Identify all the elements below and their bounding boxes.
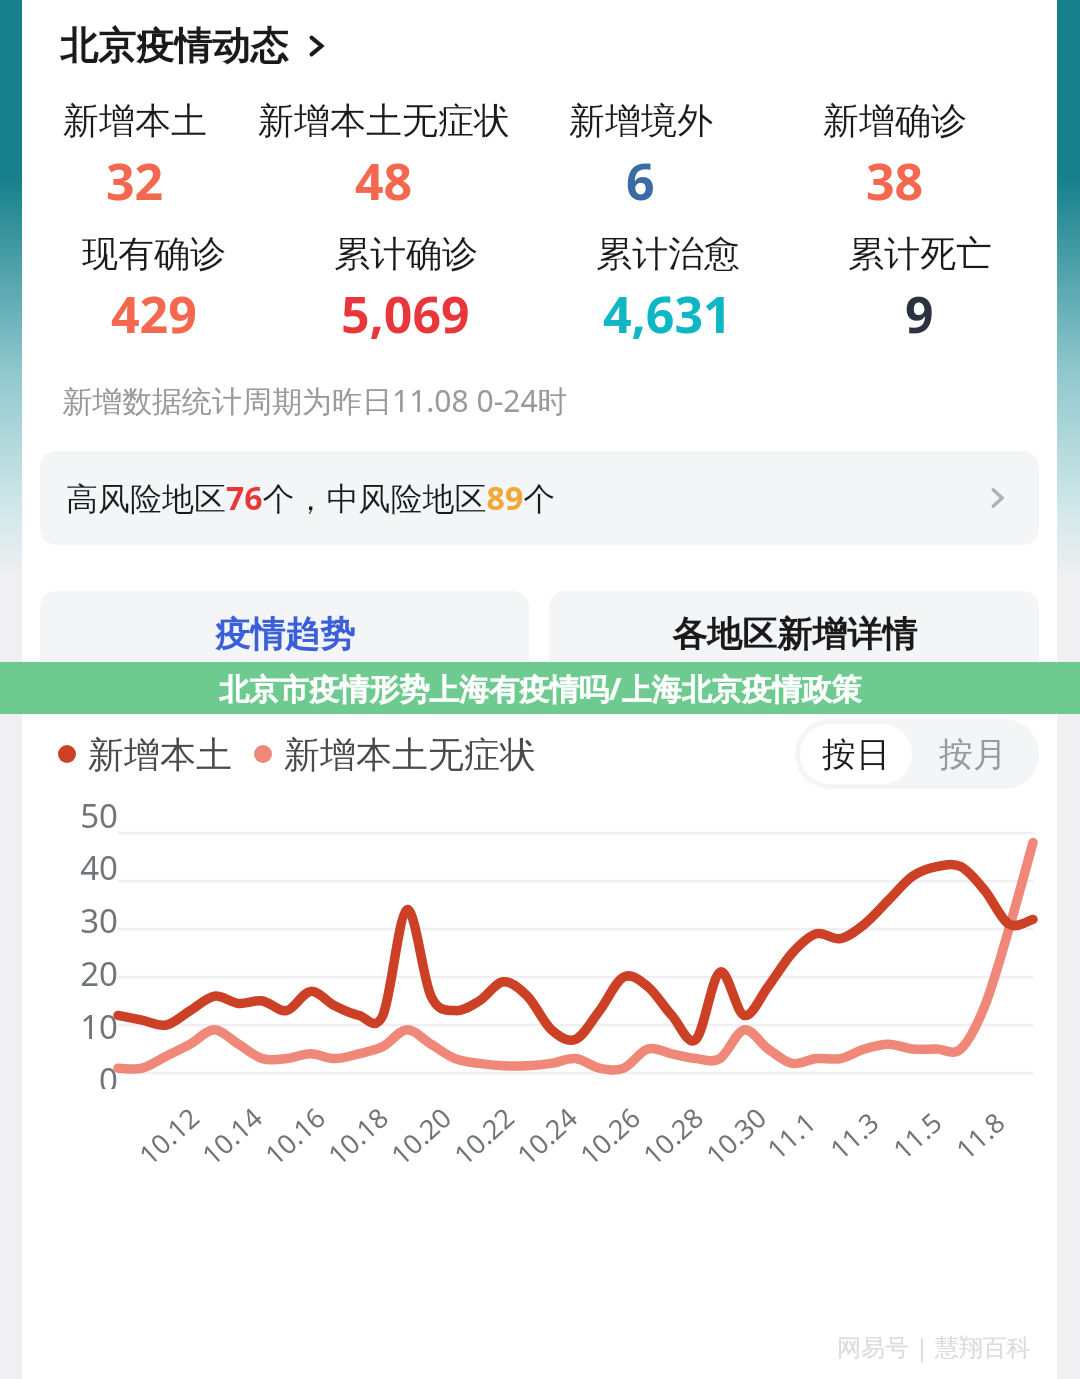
staticText: 新增境外 (569, 98, 713, 143)
staticText: 11.3 (822, 1104, 886, 1167)
staticText: 40 (80, 845, 118, 890)
staticText: 新增本土 (88, 732, 232, 777)
staticText: 20 (80, 951, 118, 996)
staticText: 5,069 (341, 280, 470, 348)
button[interactable]: 疫情趋势 (40, 591, 529, 677)
button[interactable]: 北京疫情动态 (60, 22, 330, 70)
staticText: 9 (905, 280, 934, 348)
staticText: 新增本土无症状 (258, 98, 510, 143)
staticText: 10.28 (635, 1098, 711, 1173)
staticText: 累计确诊 (334, 231, 478, 276)
staticText: 新增数据统计周期为昨日11.08 0-24时 (62, 380, 568, 421)
button[interactable]: 各地区新增详情 (549, 591, 1039, 677)
staticText: 6 (626, 147, 655, 215)
staticText: 按月 (939, 733, 1007, 776)
staticText: 4,631 (603, 280, 732, 348)
staticText: 累计治愈 (596, 231, 740, 276)
staticText: 30 (80, 898, 118, 943)
staticText: 0 (99, 1057, 118, 1089)
staticText: 10.16 (257, 1098, 333, 1173)
staticText: 新增本土 (63, 98, 207, 143)
staticText: 北京疫情动态 (60, 22, 288, 70)
button[interactable]: 按日 (800, 724, 912, 784)
staticText: 网易号 | 慧翔百科 (837, 1330, 1031, 1363)
staticText: 10.12 (131, 1098, 207, 1173)
staticText: 10.22 (446, 1098, 522, 1173)
staticText: 11.1 (759, 1104, 823, 1167)
staticText: 48 (355, 147, 413, 215)
staticText: 10.20 (383, 1098, 459, 1173)
staticText: 新增本土无症状 (284, 732, 536, 777)
staticText: 按日 (822, 733, 890, 776)
staticText: 各地区新增详情 (672, 612, 917, 656)
staticText: 10.14 (194, 1098, 270, 1173)
button[interactable]: 高风险地区76个，中风险地区89个 (40, 451, 1039, 545)
staticText: 32 (106, 147, 164, 215)
staticText: 累计死亡 (848, 231, 992, 276)
staticText: 10.26 (572, 1098, 648, 1173)
staticText: 429 (111, 280, 197, 348)
staticText: 北京市疫情形势上海有疫情吗/上海北京疫情政策 (219, 668, 862, 709)
staticText: 38 (866, 147, 924, 215)
staticText: 10.18 (320, 1098, 396, 1173)
staticText: 11.8 (948, 1104, 1012, 1167)
staticText: 10.30 (698, 1098, 774, 1173)
staticText: 10 (80, 1004, 118, 1049)
button[interactable]: 按月 (912, 724, 1034, 784)
staticText: 疫情趋势 (215, 612, 355, 656)
staticText: 10.24 (509, 1098, 585, 1173)
staticText: 11.5 (885, 1104, 949, 1167)
staticText: 高风险地区76个，中风险地区89个 (66, 476, 556, 520)
staticText: 新增确诊 (823, 98, 967, 143)
staticText: 50 (80, 793, 118, 838)
staticText: 现有确诊 (82, 231, 226, 276)
